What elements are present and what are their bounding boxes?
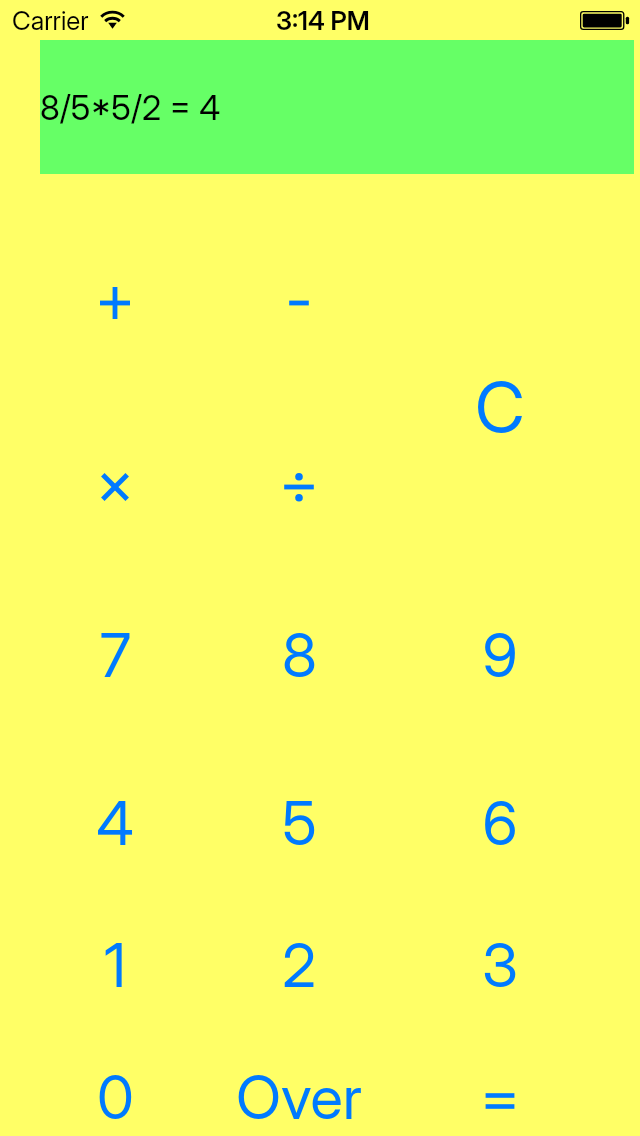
staticText: 9 [482, 619, 518, 692]
button[interactable]: Zero [25, 1032, 205, 1136]
button[interactable]: Seven [25, 572, 205, 738]
button[interactable]: Clear [410, 326, 590, 486]
staticText: Over [236, 1061, 362, 1134]
button[interactable]: Nine [410, 572, 590, 738]
button[interactable]: One [25, 895, 205, 1030]
staticText: 5 [282, 787, 317, 860]
other: Battery full [580, 11, 630, 32]
staticText: 3:14 PM [276, 5, 370, 36]
staticText: 7 [100, 619, 131, 692]
button[interactable]: Minus [209, 222, 389, 394]
button[interactable]: Three [410, 895, 590, 1030]
staticText: Carrier [12, 5, 89, 36]
staticText: 8 [282, 619, 317, 692]
button[interactable]: Equals [410, 1032, 590, 1136]
button[interactable]: Multiply [25, 396, 205, 570]
staticText: 4 [96, 787, 134, 860]
button[interactable]: Plus [25, 222, 205, 394]
button[interactable]: Two [209, 895, 389, 1030]
staticText: 6 [482, 787, 518, 860]
staticText: 1 [104, 929, 126, 1002]
staticText: 8/5*5/2 = 4 [40, 87, 221, 128]
button[interactable]: Six [410, 740, 590, 893]
other: Wi-Fi signal [98, 8, 128, 32]
button[interactable]: Over [209, 1032, 389, 1136]
button[interactable]: Four [25, 740, 205, 893]
staticText: 0 [97, 1061, 134, 1134]
staticText: 3 [482, 929, 518, 1002]
staticText: C [475, 365, 525, 448]
button[interactable]: Divide [209, 396, 389, 570]
staticText: 2 [282, 929, 316, 1002]
button[interactable]: Eight [209, 572, 389, 738]
button[interactable]: Five [209, 740, 389, 893]
